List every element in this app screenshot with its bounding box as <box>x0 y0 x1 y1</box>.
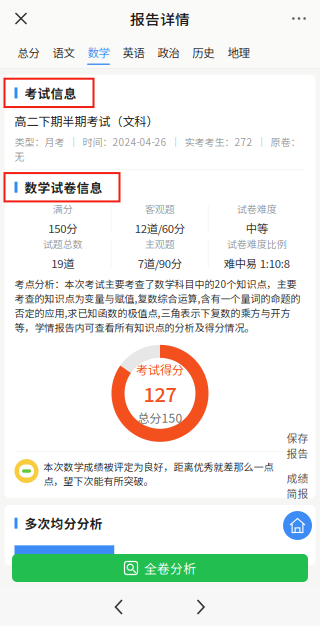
staticText: 150分 <box>48 220 77 236</box>
staticText: 政治 <box>157 44 179 60</box>
button[interactable]: 全卷分析 <box>12 554 308 582</box>
button[interactable]: 历史 <box>186 37 221 68</box>
staticText: 地理 <box>227 44 249 60</box>
staticText: 英语 <box>122 44 144 60</box>
staticText: 考试得分 <box>136 360 184 378</box>
staticText: 19道 <box>51 255 74 271</box>
staticText: 主观题 <box>145 236 175 251</box>
button[interactable]: 地理 <box>221 37 256 68</box>
staticText: 7道/90分 <box>138 255 182 271</box>
staticText: 总分150 <box>137 409 182 426</box>
button[interactable]: 数学 <box>81 37 116 68</box>
staticText: 客观题 <box>145 201 175 216</box>
button[interactable]: Close <box>0 0 42 37</box>
staticText: 报告详情 <box>130 8 190 29</box>
button[interactable]: Back <box>99 588 139 626</box>
staticText: 语文 <box>52 44 74 60</box>
staticText: 满分 <box>53 201 73 216</box>
staticText: 试题总数 <box>43 236 83 251</box>
button[interactable]: Forward <box>181 588 221 626</box>
staticText: 数学 <box>87 44 109 60</box>
staticText: 全卷分析 <box>144 559 196 577</box>
staticText: 历史 <box>192 44 214 60</box>
staticText: 高二下期半期考试（文科） <box>14 112 158 129</box>
button[interactable]: Home <box>283 511 312 540</box>
button[interactable]: 语文 <box>46 37 81 68</box>
staticText: 本次数学成绩被评定为良好，距离优秀就差那么一点点，望下次能有所突破。 <box>43 459 273 488</box>
staticText: 报告 <box>286 445 308 461</box>
button[interactable]: 英语 <box>116 37 151 68</box>
staticText: 12道/60分 <box>135 220 185 236</box>
staticText: 总分 <box>17 44 39 60</box>
staticText: 简报 <box>286 485 308 501</box>
button[interactable]: More options <box>278 0 320 37</box>
staticText: 成绩 <box>286 470 308 485</box>
staticText: 考试信息 <box>24 84 76 102</box>
button[interactable]: 总分 <box>11 37 46 68</box>
staticText: 中等 <box>246 220 268 236</box>
staticText: 类型：月考 ｜ 时间：2024-04-26 ｜ 实考考生：272 ｜ 原卷：无 <box>14 134 300 163</box>
staticText: 试卷难度 <box>237 201 277 216</box>
button[interactable]: 政治 <box>151 37 186 68</box>
staticText: 18.39 <box>153 555 176 569</box>
staticText: 试卷难度比例 <box>227 236 287 251</box>
staticText: 难中易 1:10:8 <box>224 255 290 271</box>
staticText: 数学试卷信息 <box>24 178 102 196</box>
staticText: 保存 <box>286 430 308 445</box>
staticText: 考点分析：本次考试主要考查了数学科目中的20个知识点，主要考查的知识点为变量与赋… <box>14 276 300 334</box>
button[interactable]: 保存 <box>283 431 312 460</box>
staticText: 多次均分分析 <box>24 514 102 532</box>
staticText: 127 <box>143 379 176 408</box>
button[interactable]: 成绩 <box>283 471 312 500</box>
